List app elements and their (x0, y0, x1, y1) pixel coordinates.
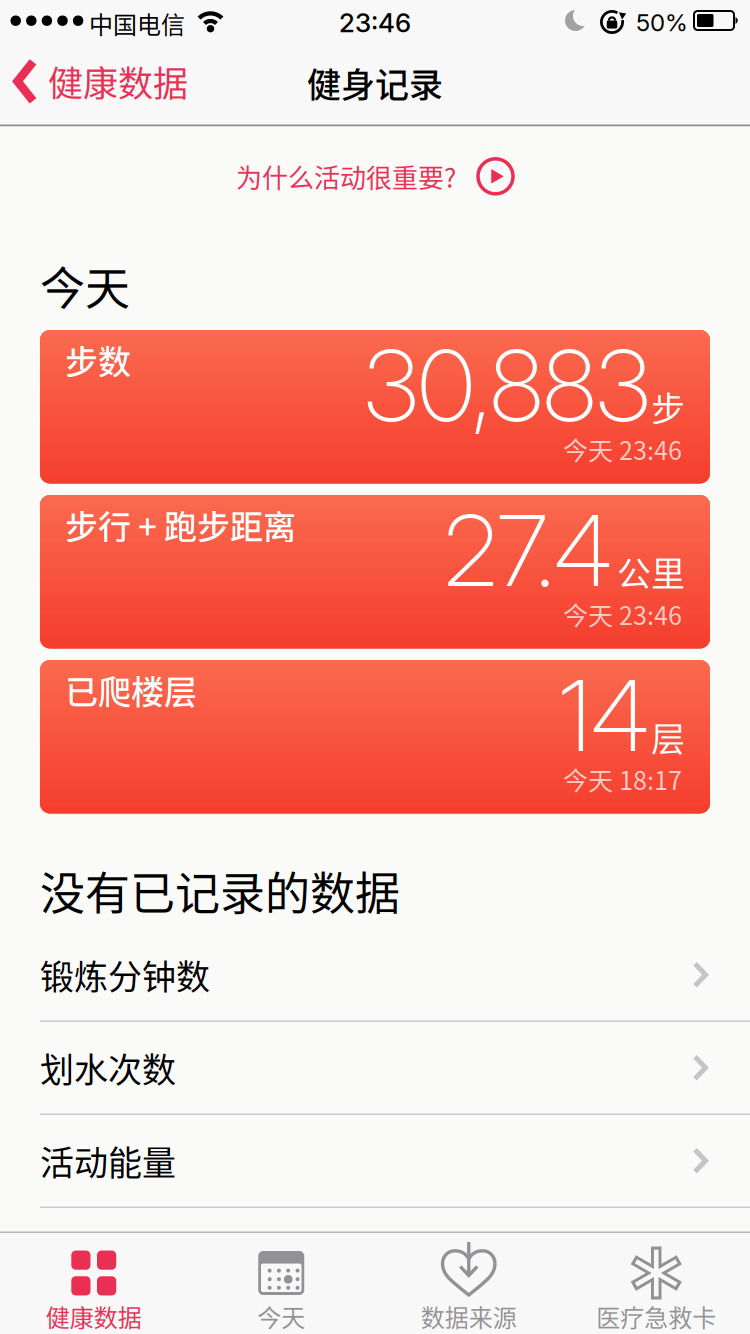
staticText: 医疗急救卡 (596, 1299, 716, 1334)
staticText: 划水次数 (40, 1043, 176, 1092)
button[interactable]: 已爬楼层 (40, 660, 710, 813)
staticText: 步 (651, 382, 685, 431)
staticText: 已爬楼层 (65, 666, 197, 714)
staticText: 14 (559, 656, 649, 775)
staticText: 健身记录 (307, 58, 443, 107)
button[interactable]: 划水次数 (0, 1022, 750, 1115)
button[interactable]: 今天 (187, 1233, 375, 1333)
staticText: 为什么活动很重要? (236, 157, 456, 195)
staticText: 步行 + 跑步距离 (65, 501, 296, 549)
staticText: 中国电信 (89, 6, 185, 41)
staticText: 50% (636, 8, 688, 37)
staticText: 没有已记录的数据 (40, 858, 400, 923)
staticText: 活动能量 (40, 1136, 176, 1185)
button[interactable]: 数据来源 (375, 1233, 562, 1333)
button[interactable]: 为什么活动很重要? (236, 157, 514, 195)
button[interactable]: 健康数据 (0, 1233, 187, 1333)
staticText: 30,883 (364, 326, 650, 445)
staticText: 数据来源 (421, 1299, 517, 1334)
button[interactable]: 锻炼分钟数 (0, 929, 750, 1022)
staticText: 27.4 (444, 491, 612, 610)
button[interactable]: 步数 (40, 330, 710, 483)
staticText: 今天 23:46 (563, 596, 682, 632)
staticText: 锻炼分钟数 (40, 950, 210, 999)
staticText: 健康数据 (48, 56, 188, 107)
staticText: 今天 23:46 (563, 431, 682, 467)
staticText: 健康数据 (46, 1299, 142, 1334)
button[interactable]: 活动能量 (0, 1115, 750, 1208)
staticText: 今天 (257, 1299, 305, 1334)
staticText: 步数 (65, 336, 131, 384)
button[interactable]: 医疗急救卡 (562, 1233, 750, 1333)
staticText: 公里 (617, 547, 685, 596)
staticText: 今天 (40, 253, 130, 318)
staticText: 层 (651, 712, 685, 761)
button[interactable]: 返回健康数据 (0, 40, 174, 91)
button[interactable]: 步行 + 跑步距离 (40, 495, 710, 648)
staticText: 23:46 (339, 7, 411, 38)
staticText: 今天 18:17 (563, 761, 682, 797)
